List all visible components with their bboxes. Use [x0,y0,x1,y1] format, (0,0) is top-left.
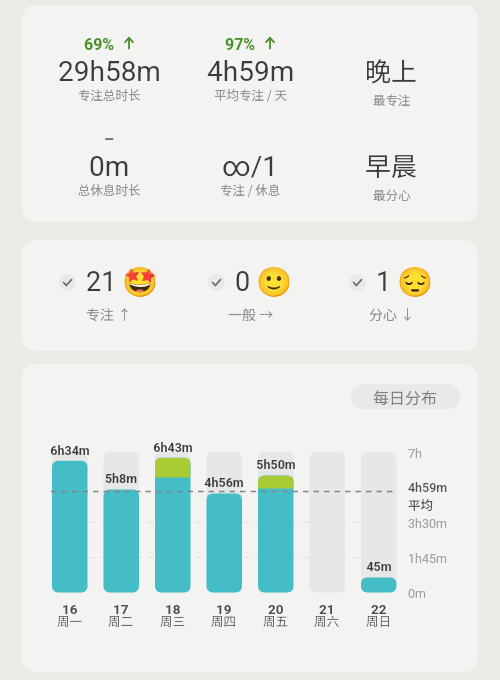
staticText: 晚上 [365,51,418,89]
staticText: 😔 [397,265,434,299]
button[interactable]: 晚上 [321,35,462,111]
staticText: 18 [165,601,181,617]
staticText: 6h34m [38,443,102,458]
staticText: 专注 ↑ [86,304,132,324]
staticText: 4h59m [207,55,295,88]
staticText: 早晨 [365,146,418,184]
button[interactable]: – [38,130,180,201]
button[interactable]: 97% [180,35,321,106]
staticText: 专注 / 休息 [220,180,281,198]
staticText: 0m [89,150,130,183]
button[interactable]: 1 [321,240,462,351]
staticText: 最分心 [373,185,411,203]
button[interactable]: ∞/1 [180,130,321,201]
staticText: 周三 [160,611,186,629]
staticText: 21 [86,266,117,298]
button[interactable]: 0 [180,240,321,351]
staticText: 0m [408,586,426,601]
staticText: 69% [84,35,115,50]
staticText: 平均 [408,495,434,513]
staticText: 1 [376,266,392,298]
staticText: ∞/1 [222,150,279,183]
staticText: 🤩 [122,265,159,299]
staticText: 专注总时长 [78,85,141,103]
staticText: 分心 ↓ [369,304,415,324]
staticText: 4h59m [408,480,448,495]
staticText: 总休息时长 [78,180,141,198]
button[interactable]: 早晨 [321,130,462,206]
staticText: 6h43m [141,440,205,455]
staticText: 19 [216,601,232,617]
staticText: 每日分布 [373,385,438,408]
staticText: 周四 [211,611,237,629]
staticText: 一般 → [228,304,274,324]
staticText: 45m [347,559,411,574]
staticText: – [104,130,115,145]
staticText: 21 [319,601,335,617]
staticText: 周日 [366,611,392,629]
staticText: 97% [225,35,256,50]
staticText: 3h30m [408,516,447,531]
staticText: 7h [408,446,422,461]
staticText: 0 [235,266,251,298]
staticText: 1h45m [408,551,447,566]
staticText: 17 [113,601,129,617]
staticText: 周一 [57,611,83,629]
staticText: 🙂 [256,265,293,299]
staticText: 周六 [314,611,340,629]
staticText: 20 [268,601,284,617]
staticText: 29h58m [58,55,161,88]
staticText: 周二 [108,611,134,629]
staticText: 最专注 [373,90,411,108]
staticText: 22 [371,601,387,617]
staticText: 平均专注 / 天 [214,85,288,103]
staticText: 16 [62,601,78,617]
button[interactable]: 69% [38,35,180,106]
staticText: 5h50m [244,457,308,472]
button[interactable]: 21 [38,240,180,351]
staticText: 周五 [263,611,289,629]
staticText: 5h8m [89,471,153,486]
button[interactable]: 每日分布 [351,384,460,409]
staticText: 4h56m [192,475,256,490]
